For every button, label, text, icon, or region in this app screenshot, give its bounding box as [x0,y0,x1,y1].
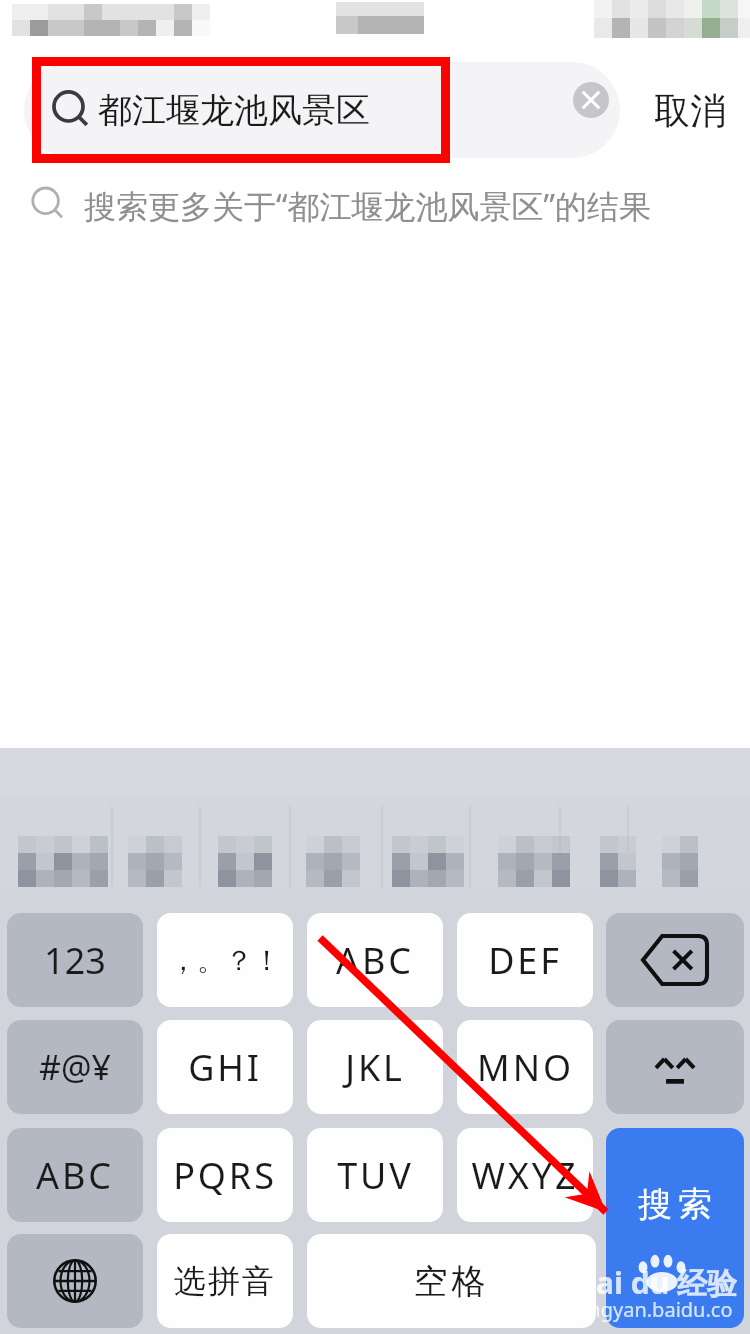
button[interactable]: JKL [307,1020,443,1114]
button[interactable]: Switch input method [7,1234,143,1328]
button[interactable]: DEF [457,913,593,1007]
button[interactable]: 搜索更多关于“都江堰龙池风景区”的结果 [0,176,750,236]
staticText: GHI [188,1043,262,1092]
staticText: Bai du 经验 [576,1262,737,1298]
button[interactable]: PQRS [157,1128,293,1222]
button[interactable]: 取消 [640,70,740,150]
button[interactable]: GHI [157,1020,293,1114]
staticText: MNO [477,1043,574,1092]
button[interactable]: 选拼音 [157,1234,293,1328]
button[interactable]: Delete [606,913,744,1007]
button[interactable]: 空格 [307,1234,596,1328]
button[interactable]: WXYZ [457,1128,593,1222]
button[interactable]: ABC [307,913,443,1007]
button[interactable]: Clear text [573,82,609,118]
staticText: 搜索 [635,1183,715,1226]
staticText: 选拼音 [174,1261,276,1301]
staticText: ABC [36,1151,114,1200]
button[interactable]: MNO [457,1020,593,1114]
staticText: TUV [337,1151,414,1200]
button[interactable]: Emoji [606,1020,744,1114]
button[interactable]: ，。？！ [157,913,293,1007]
staticText: DEF [488,936,562,985]
staticText: 123 [44,936,106,985]
staticText: ABC [336,936,414,985]
staticText: 搜索更多关于“都江堰龙池风景区”的结果 [84,184,651,228]
button[interactable]: 搜索 [606,1128,744,1328]
staticText: 都江堰龙池风景区 [98,89,370,132]
staticText: JKL [345,1043,405,1092]
button[interactable]: TUV [307,1128,443,1222]
button[interactable]: #@¥ [7,1020,143,1114]
button[interactable]: ABC [7,1128,143,1222]
button[interactable] [24,62,620,158]
staticText: PQRS [173,1151,277,1200]
staticText: WXYZ [471,1151,579,1200]
staticText: 取消 [654,88,726,133]
other: Search [50,88,94,132]
button[interactable]: 123 [7,913,143,1007]
staticText: #@¥ [39,1044,111,1090]
staticText: ，。？！ [169,943,281,978]
staticText: 空格 [413,1260,490,1303]
staticText: jingyan.baidu.com [578,1296,750,1324]
